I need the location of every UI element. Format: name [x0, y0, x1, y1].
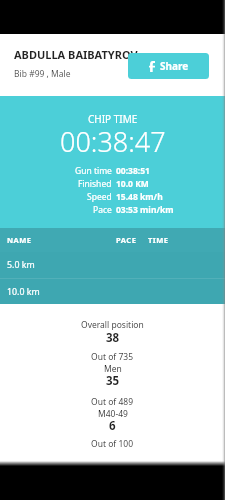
button[interactable]: Share: [128, 53, 209, 79]
staticText: Pace: [93, 204, 112, 216]
button[interactable]: 10.0 km: [0, 279, 225, 304]
staticText: NAME: [7, 235, 32, 245]
staticText: Men: [104, 363, 122, 375]
staticText: Gun time: [75, 165, 112, 177]
staticText: Speed: [87, 191, 112, 203]
button[interactable]: 5.0 km: [0, 252, 225, 278]
staticText: 10.0 km: [7, 286, 40, 298]
staticText: 03:53 min/km: [116, 204, 174, 216]
staticText: TIME: [148, 235, 169, 245]
staticText: 38: [106, 330, 120, 346]
staticText: PACE: [116, 235, 137, 245]
staticText: 5.0 km: [7, 259, 35, 271]
staticText: ABDULLA BAIBATYROV: [14, 47, 138, 62]
staticText: 00:38:47: [60, 123, 166, 160]
staticText: Out of 100: [91, 438, 134, 450]
staticText: 6: [109, 418, 116, 434]
staticText: Out of 489: [91, 396, 134, 408]
staticText: 15.48 km/h: [116, 191, 163, 203]
staticText: 35: [106, 373, 120, 389]
staticText: Bib #99 , Male: [14, 68, 71, 80]
staticText: Finished: [78, 178, 112, 190]
staticText: Share: [160, 59, 189, 73]
staticText: Overall position: [81, 319, 144, 331]
staticText: Out of 735: [91, 351, 134, 363]
staticText: 00:38:51: [116, 165, 150, 177]
staticText: CHIP TIME: [88, 112, 138, 126]
staticText: M40-49: [98, 408, 128, 420]
staticText: 10.0 KM: [116, 178, 149, 190]
